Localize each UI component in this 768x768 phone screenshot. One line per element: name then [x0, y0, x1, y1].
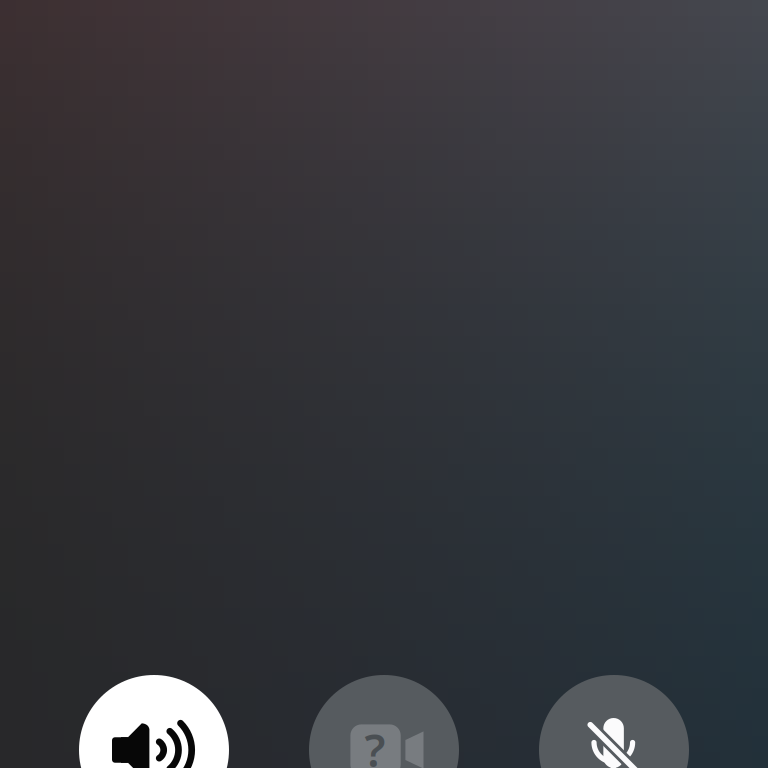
button[interactable]: Speaker: [79, 675, 229, 768]
staticText: ?: [365, 719, 386, 768]
button[interactable]: Mute: [539, 675, 689, 768]
button[interactable]: Video: [309, 675, 459, 768]
